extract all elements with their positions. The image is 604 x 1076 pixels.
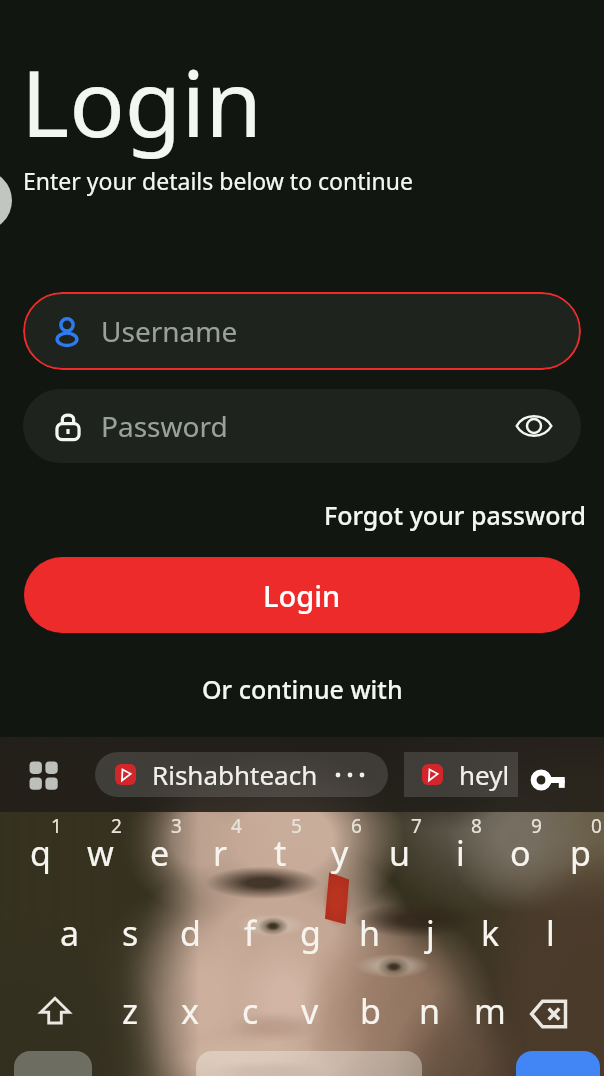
button[interactable]: e: [130, 817, 190, 889]
staticText: 9: [531, 813, 542, 839]
button[interactable]: c: [220, 975, 280, 1047]
button[interactable]: q: [10, 817, 70, 889]
button[interactable]: t: [250, 817, 310, 889]
staticText: n: [419, 988, 441, 1034]
staticText: 4: [231, 813, 242, 839]
button[interactable]: Username: [23, 292, 581, 370]
button[interactable]: a: [40, 897, 100, 969]
button[interactable]: Rishabhteach: [95, 752, 388, 797]
staticText: m: [474, 988, 506, 1034]
button[interactable]: v: [280, 975, 340, 1047]
button[interactable]: l: [520, 897, 580, 969]
button[interactable]: o: [490, 817, 550, 889]
button[interactable]: s: [100, 897, 160, 969]
staticText: 2: [111, 813, 122, 839]
staticText: e: [150, 830, 170, 876]
button[interactable]: d: [160, 897, 220, 969]
button[interactable]: k: [460, 897, 520, 969]
button[interactable]: p: [550, 817, 604, 889]
staticText: t: [274, 830, 287, 876]
staticText: Forgot your password: [324, 498, 587, 532]
staticText: Username: [101, 312, 238, 350]
button[interactable]: Enter: [516, 1051, 600, 1076]
staticText: z: [122, 988, 138, 1034]
staticText: l: [546, 910, 555, 956]
staticText: Login: [263, 576, 341, 615]
staticText: 5: [291, 813, 302, 839]
button[interactable]: m: [460, 975, 520, 1047]
button[interactable]: g: [280, 897, 340, 969]
staticText: 1: [51, 813, 62, 839]
staticText: heyl: [459, 757, 510, 792]
button[interactable]: Space: [196, 1051, 422, 1076]
button[interactable]: Password: [23, 389, 581, 463]
button[interactable]: i: [430, 817, 490, 889]
button[interactable]: heyl: [404, 752, 518, 797]
button[interactable]: b: [340, 975, 400, 1047]
staticText: x: [181, 988, 199, 1034]
staticText: Login: [21, 39, 263, 164]
staticText: b: [360, 988, 381, 1034]
staticText: Or continue with: [202, 672, 403, 706]
staticText: Password: [101, 407, 228, 445]
button[interactable]: h: [340, 897, 400, 969]
staticText: 8: [471, 813, 482, 839]
staticText: u: [389, 830, 411, 876]
button[interactable]: u: [370, 817, 430, 889]
staticText: c: [242, 988, 259, 1034]
staticText: 3: [171, 813, 182, 839]
button[interactable]: r: [190, 817, 250, 889]
staticText: r: [213, 830, 228, 876]
staticText: g: [300, 910, 321, 956]
button[interactable]: n: [400, 975, 460, 1047]
button[interactable]: f: [220, 897, 280, 969]
staticText: w: [87, 830, 114, 876]
button[interactable]: z: [100, 975, 160, 1047]
staticText: v: [301, 988, 319, 1034]
staticText: p: [570, 830, 591, 876]
staticText: s: [122, 910, 139, 956]
staticText: f: [244, 910, 256, 956]
staticText: d: [180, 910, 201, 956]
button[interactable]: Symbols: [14, 1051, 92, 1076]
staticText: Rishabhteach: [152, 757, 318, 792]
button[interactable]: Password manager: [528, 759, 570, 801]
staticText: i: [456, 830, 465, 876]
button[interactable]: j: [400, 897, 460, 969]
staticText: y: [331, 830, 349, 876]
staticText: a: [60, 910, 80, 956]
staticText: o: [510, 830, 531, 876]
button[interactable]: y: [310, 817, 370, 889]
staticText: 6: [351, 813, 362, 839]
button[interactable]: Shift: [37, 993, 73, 1029]
staticText: 7: [411, 813, 422, 839]
staticText: 0: [591, 813, 602, 839]
staticText: Enter your details below to continue: [23, 165, 413, 196]
staticText: k: [481, 910, 500, 956]
button[interactable]: x: [160, 975, 220, 1047]
button[interactable]: Keyboard menu: [24, 756, 62, 794]
staticText: h: [359, 910, 381, 956]
button[interactable]: Login: [24, 557, 580, 633]
button[interactable]: w: [70, 817, 130, 889]
button[interactable]: Show password: [509, 401, 559, 451]
staticText: j: [426, 910, 435, 956]
staticText: q: [30, 830, 51, 876]
button[interactable]: Backspace: [527, 992, 571, 1036]
button[interactable]: Forgot your password: [324, 498, 587, 532]
